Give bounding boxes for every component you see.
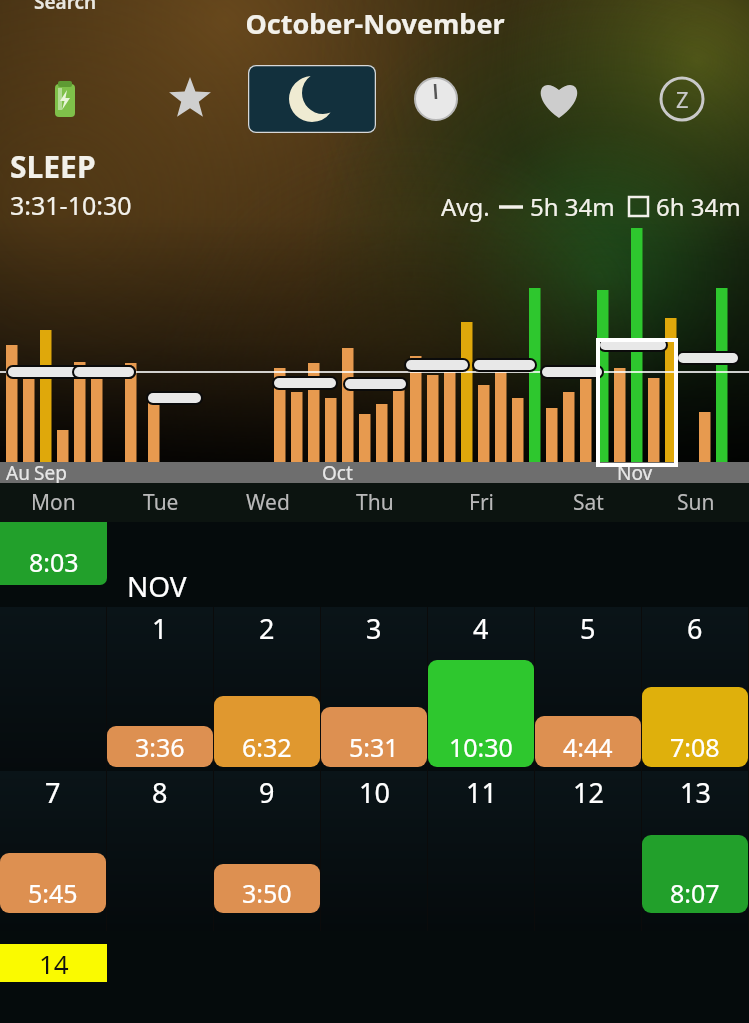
- staticText: Wed: [246, 488, 290, 517]
- button[interactable]: 8:03: [0, 522, 107, 585]
- staticText: 7: [45, 774, 61, 811]
- staticText: Thu: [356, 488, 394, 517]
- button[interactable]: Thu: [321, 483, 428, 522]
- button[interactable]: 5: [535, 607, 641, 785]
- staticText: 11: [466, 774, 497, 811]
- button[interactable]: 6: [642, 607, 748, 785]
- staticText: NOV: [127, 567, 187, 605]
- button[interactable]: Sleep: [248, 65, 376, 133]
- staticText: 2: [259, 610, 275, 647]
- button[interactable]: 10: [321, 771, 427, 931]
- staticText: 9: [259, 774, 275, 811]
- button[interactable]: Sleep mode: [650, 67, 714, 131]
- staticText: 4: [473, 610, 489, 647]
- button[interactable]: [0, 522, 107, 607]
- staticText: 3:31-10:30: [10, 188, 132, 222]
- staticText: 6: [687, 610, 703, 647]
- button[interactable]: [0, 607, 106, 785]
- button[interactable]: 8: [107, 771, 213, 931]
- button[interactable]: 4: [428, 607, 534, 785]
- staticText: 10:30: [449, 730, 513, 764]
- button[interactable]: Search: [34, 0, 97, 15]
- staticText: 5:31: [349, 730, 399, 764]
- staticText: 13: [680, 774, 711, 811]
- staticText: Sun: [677, 488, 715, 517]
- staticText: 5h 34m: [530, 190, 615, 223]
- button[interactable]: Fri: [428, 483, 535, 522]
- staticText: Au: [6, 460, 30, 486]
- staticText: 14: [39, 946, 69, 981]
- staticText: Avg.: [441, 190, 490, 223]
- staticText: 8:03: [29, 545, 79, 579]
- staticText: Mon: [31, 488, 76, 517]
- button[interactable]: 9: [214, 771, 320, 931]
- button[interactable]: [107, 522, 214, 607]
- button[interactable]: Sat: [535, 483, 642, 522]
- staticText: 5:45: [28, 876, 78, 910]
- staticText: Search: [34, 0, 97, 15]
- button[interactable]: 13: [642, 771, 748, 931]
- button[interactable]: 7: [0, 771, 106, 931]
- staticText: Tue: [143, 488, 179, 517]
- button[interactable]: Wed: [214, 483, 321, 522]
- staticText: 5: [580, 610, 596, 647]
- staticText: Oct: [322, 460, 353, 486]
- staticText: Sat: [573, 488, 604, 517]
- staticText: 10: [359, 774, 390, 811]
- staticText: 8:07: [670, 876, 720, 910]
- button[interactable]: 12: [535, 771, 641, 931]
- staticText: Sep: [34, 460, 67, 486]
- staticText: 6h 34m: [656, 190, 741, 223]
- button[interactable]: Favorites: [158, 67, 222, 131]
- staticText: 3:50: [242, 876, 292, 910]
- staticText: Fri: [469, 488, 494, 517]
- button[interactable]: Mon: [0, 483, 107, 522]
- staticText: 1: [152, 610, 168, 647]
- button[interactable]: 11: [428, 771, 534, 931]
- staticText: October-November: [245, 5, 505, 42]
- staticText: Nov: [617, 460, 653, 486]
- button[interactable]: Battery: [33, 67, 97, 131]
- staticText: 3:36: [135, 730, 185, 764]
- button[interactable]: Tue: [107, 483, 214, 522]
- staticText: 6:32: [242, 730, 292, 764]
- button[interactable]: 14: [0, 944, 107, 982]
- staticText: 7:08: [670, 730, 720, 764]
- staticText: 12: [573, 774, 604, 811]
- button[interactable]: 3: [321, 607, 427, 785]
- staticText: 3: [366, 610, 382, 647]
- button[interactable]: Activity: [404, 67, 468, 131]
- button[interactable]: [0, 931, 107, 1023]
- staticText: Z: [676, 84, 689, 114]
- staticText: 8: [152, 774, 168, 811]
- staticText: 4:44: [563, 730, 613, 764]
- button[interactable]: Heart rate: [527, 67, 591, 131]
- button[interactable]: Sun: [642, 483, 749, 522]
- staticText: SLEEP: [10, 146, 96, 187]
- button[interactable]: 2: [214, 607, 320, 785]
- button[interactable]: 1: [107, 607, 213, 785]
